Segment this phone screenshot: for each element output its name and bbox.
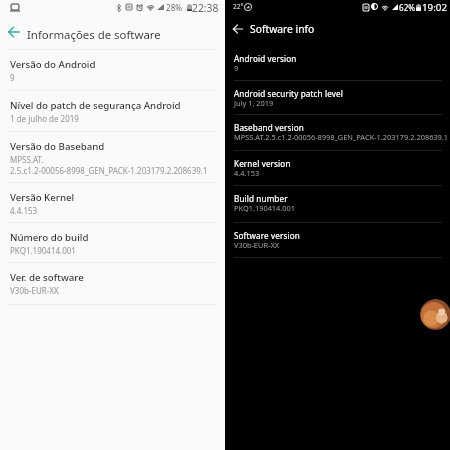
staticText: 4.4.153 xyxy=(234,168,260,178)
button[interactable]: Versão do Android xyxy=(0,49,225,90)
staticText: V30b-EUR-XX xyxy=(10,285,59,296)
staticText: July 1, 2019 xyxy=(234,98,274,108)
staticText: 4.4.153 xyxy=(10,205,38,216)
staticText: Nível do patch de segurança Android xyxy=(10,99,181,112)
staticText: Versão do Baseband xyxy=(10,140,105,153)
staticText: V30b-EUR-XX xyxy=(234,240,280,250)
staticText: Software version xyxy=(234,230,300,241)
staticText: 9 xyxy=(10,72,15,83)
staticText: 19:02 xyxy=(422,1,448,14)
button[interactable]: Software version xyxy=(225,222,450,257)
staticText: Build number xyxy=(234,193,288,204)
staticText: 9 xyxy=(234,63,239,73)
button[interactable]: Número do build xyxy=(0,222,225,262)
button[interactable]: Chat head xyxy=(420,299,450,330)
staticText: Android security patch level xyxy=(234,88,343,99)
staticText: Kernel version xyxy=(234,158,291,169)
staticText: Ver. de software xyxy=(10,271,84,284)
button[interactable]: Kernel version xyxy=(225,150,450,186)
staticText: Baseband version xyxy=(234,122,304,133)
staticText: MPSS.AT. xyxy=(10,154,44,165)
staticText: Versão do Android xyxy=(10,58,96,71)
button[interactable]: Ver. de software xyxy=(0,262,225,304)
staticText: PKQ1.190414.001 xyxy=(10,245,76,256)
button[interactable]: Android version xyxy=(225,45,450,80)
button[interactable]: Android security patch level xyxy=(225,80,450,115)
staticText: 22:38 xyxy=(192,1,219,15)
button[interactable]: Nível do patch de segurança Android xyxy=(0,90,225,131)
staticText: Android version xyxy=(234,53,297,64)
staticText: MPSS.AT.2.5.c1.2-00056-8998_GEN_PACK-1.2… xyxy=(234,132,449,142)
staticText: Informações de software xyxy=(27,27,161,43)
button[interactable]: Baseband version xyxy=(225,114,450,150)
staticText: 62% xyxy=(399,2,415,13)
staticText: Versão Kernel xyxy=(10,191,75,204)
staticText: 28% xyxy=(166,2,182,13)
button[interactable]: Navigate up xyxy=(3,21,25,43)
button[interactable]: Versão Kernel xyxy=(0,182,225,221)
staticText: 22° xyxy=(233,2,244,11)
button[interactable]: Versão do Baseband xyxy=(0,131,225,182)
staticText: Software info xyxy=(250,22,315,36)
staticText: Número do build xyxy=(10,231,89,244)
button[interactable]: Navigate up xyxy=(228,19,248,39)
staticText: 2.5.c1.2-00056-8998_GEN_PACK-1.203179.2.… xyxy=(10,165,208,176)
staticText: 1 de julho de 2019 xyxy=(10,113,79,124)
staticText: PKQ1.190414.001 xyxy=(234,203,296,213)
button[interactable]: Build number xyxy=(225,185,450,221)
